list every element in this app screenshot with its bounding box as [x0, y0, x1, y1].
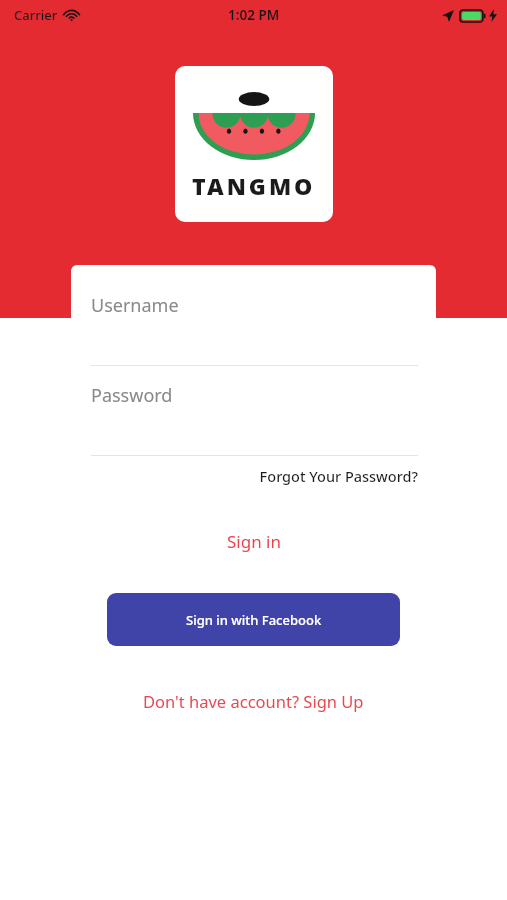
staticText: Forgot Your Password?: [259, 466, 418, 486]
staticText: Don't have account? Sign Up: [143, 690, 364, 712]
staticText: 1:02 PM: [228, 6, 280, 24]
button[interactable]: Forgot Your Password?: [248, 459, 418, 493]
staticText: TANGMO: [192, 170, 316, 201]
button[interactable]: Username: [91, 277, 418, 355]
button[interactable]: Sign in with Facebook: [107, 593, 400, 646]
staticText: Carrier: [14, 6, 58, 24]
button[interactable]: Don't have account? Sign Up: [0, 686, 507, 716]
staticText: Password: [91, 383, 173, 408]
staticText: Username: [91, 293, 179, 318]
staticText: Sign in: [227, 530, 281, 553]
button[interactable]: Sign in: [107, 516, 400, 566]
button[interactable]: Password: [91, 369, 418, 453]
staticText: Sign in with Facebook: [186, 611, 322, 629]
